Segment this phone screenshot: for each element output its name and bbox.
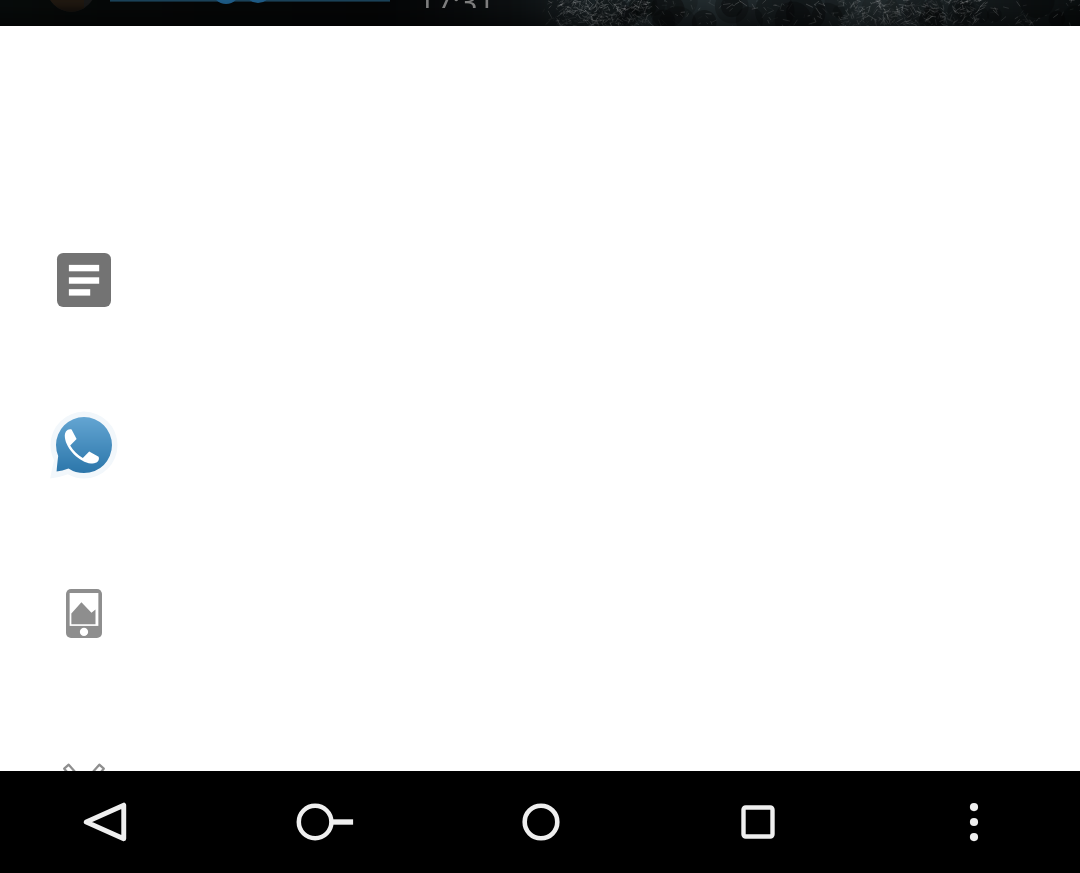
button[interactable] [0,697,1080,864]
button[interactable] [0,196,1080,363]
button[interactable]: Back [59,776,151,868]
staticText: 17:31 [418,0,495,8]
button[interactable]: More options [928,776,1020,868]
button[interactable] [0,530,1080,697]
button[interactable]: Home [495,776,587,868]
button[interactable]: Switch input method [279,776,371,868]
button[interactable]: Recent apps [712,776,804,868]
button[interactable] [0,363,1080,530]
